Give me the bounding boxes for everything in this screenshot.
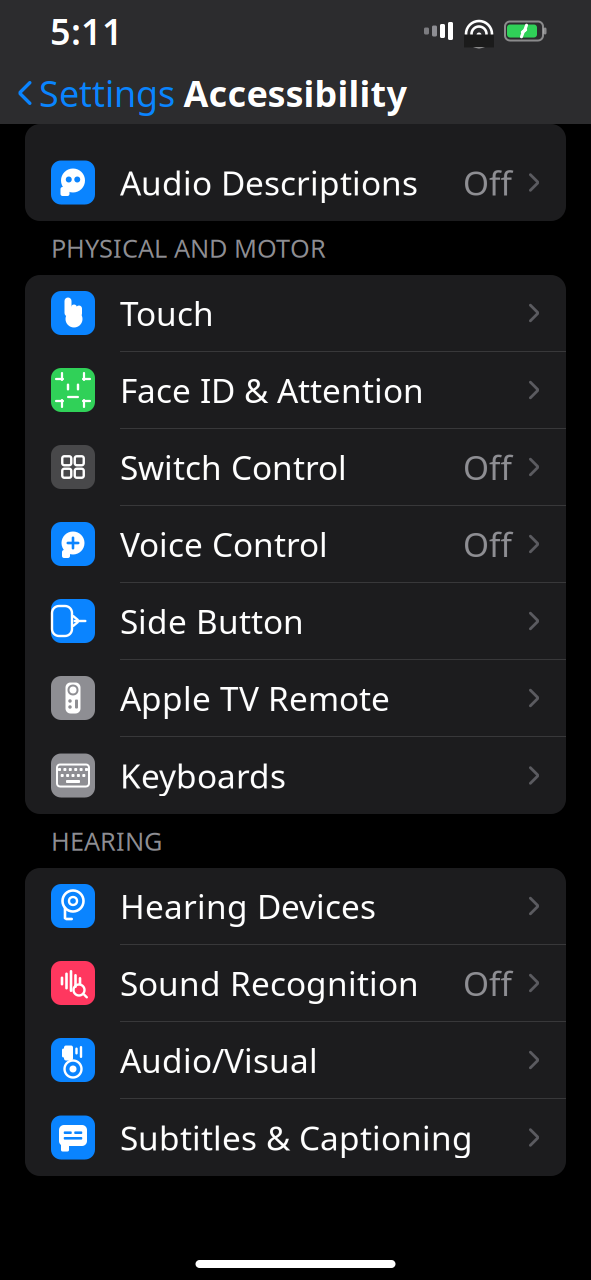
staticText: Switch Control [120, 445, 347, 489]
button[interactable]: Audio Descriptions [25, 144, 566, 221]
staticText: Subtitles & Captioning [120, 1115, 473, 1160]
staticText: Spoken Content [120, 54, 372, 99]
staticText: Off [463, 160, 512, 205]
staticText: 5:11 [50, 7, 123, 55]
button[interactable]: Spoken Content [25, 38, 566, 115]
button[interactable]: Face ID & Attention [25, 352, 566, 429]
staticText: HEARING [51, 824, 162, 858]
button[interactable]: Audio/Visual [25, 1022, 566, 1099]
staticText: Keyboards [120, 753, 286, 798]
button[interactable]: Keyboards [25, 737, 566, 814]
button[interactable]: Subtitles & Captioning [25, 1099, 566, 1176]
staticText: Audio/Visual [120, 1038, 318, 1082]
staticText: Voice Control [120, 522, 328, 566]
staticText: Audio Descriptions [120, 160, 418, 205]
button[interactable]: Settings [0, 61, 175, 125]
staticText: Settings [39, 69, 175, 117]
staticText: Off [463, 961, 512, 1005]
button[interactable]: Hearing Devices [25, 868, 566, 945]
staticText: Face ID & Attention [120, 368, 424, 412]
button[interactable]: Side Button [25, 583, 566, 660]
staticText: Accessibility [183, 69, 407, 117]
staticText: Sound Recognition [120, 961, 419, 1005]
staticText: Off [463, 445, 512, 489]
staticText: Touch [120, 291, 214, 335]
button[interactable]: Voice Control [25, 506, 566, 583]
staticText: Hearing Devices [120, 884, 376, 928]
staticText: PHYSICAL AND MOTOR [51, 231, 326, 265]
staticText: Apple TV Remote [120, 676, 390, 720]
staticText: Off [463, 522, 512, 566]
button[interactable]: Apple TV Remote [25, 660, 566, 737]
button[interactable]: Sound Recognition [25, 945, 566, 1022]
staticText: Side Button [120, 599, 304, 643]
button[interactable]: Switch Control [25, 429, 566, 506]
button[interactable]: Touch [25, 275, 566, 352]
